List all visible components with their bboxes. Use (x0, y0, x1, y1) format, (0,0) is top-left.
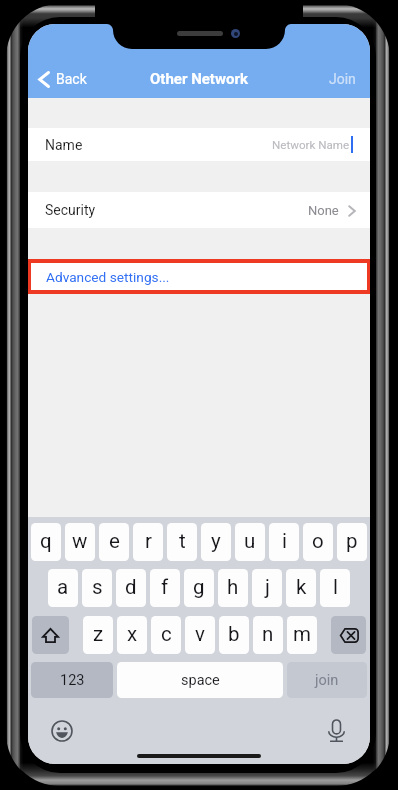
staticText: i (282, 529, 287, 553)
button[interactable]: q (31, 523, 61, 561)
staticText: n (262, 622, 274, 646)
button[interactable]: t (167, 523, 197, 561)
button[interactable]: y (201, 523, 231, 561)
staticText: d (125, 575, 137, 599)
staticText: z (93, 622, 104, 646)
button[interactable]: b (219, 616, 249, 654)
button[interactable]: g (184, 569, 214, 607)
button[interactable]: Emoji keyboard (46, 715, 78, 747)
button[interactable]: w (65, 523, 95, 561)
staticText: q (40, 529, 52, 553)
button[interactable]: u (235, 523, 265, 561)
button[interactable]: n (253, 616, 283, 654)
staticText: u (244, 529, 256, 553)
button[interactable]: Dictation (320, 715, 352, 747)
button[interactable]: Backspace (331, 616, 366, 654)
button[interactable]: j (252, 569, 282, 607)
staticText: m (293, 622, 311, 646)
staticText: Network Name (272, 138, 350, 152)
staticText: x (127, 622, 138, 646)
button[interactable]: d (116, 569, 146, 607)
staticText: r (145, 529, 152, 553)
button[interactable]: Security (28, 192, 370, 228)
staticText: p (346, 529, 358, 553)
staticText: l (333, 575, 338, 599)
button[interactable]: h (218, 569, 248, 607)
staticText: Name (45, 137, 83, 153)
staticText: f (161, 575, 169, 599)
staticText: a (57, 575, 69, 599)
staticText: b (228, 622, 240, 646)
button[interactable]: v (185, 616, 215, 654)
button[interactable]: l (320, 569, 350, 607)
button[interactable]: z (83, 616, 113, 654)
staticText: Security (45, 202, 96, 218)
button[interactable]: a (48, 569, 78, 607)
staticText: space (181, 672, 220, 689)
staticText: c (161, 622, 172, 646)
staticText: k (296, 575, 307, 599)
button[interactable]: p (337, 523, 367, 561)
button[interactable]: Join (329, 60, 356, 98)
staticText: None (308, 203, 339, 218)
staticText: Other Network (150, 70, 248, 88)
staticText: Back (56, 71, 87, 87)
button[interactable]: join (287, 662, 367, 698)
button[interactable]: m (287, 616, 317, 654)
button[interactable]: Name (28, 128, 370, 161)
staticText: o (312, 529, 324, 553)
staticText: 123 (60, 672, 85, 689)
staticText: Advanced settings... (46, 269, 170, 285)
button[interactable]: i (269, 523, 299, 561)
button[interactable]: space (117, 662, 283, 698)
staticText: g (193, 575, 205, 599)
button[interactable]: r (133, 523, 163, 561)
button[interactable]: Back (38, 60, 87, 98)
button[interactable]: s (82, 569, 112, 607)
button[interactable]: Advanced settings... (31, 263, 367, 290)
staticText: t (179, 529, 186, 553)
button[interactable]: x (117, 616, 147, 654)
staticText: y (211, 529, 221, 553)
staticText: w (72, 529, 88, 553)
button[interactable]: Shift (32, 616, 69, 654)
button[interactable]: c (151, 616, 181, 654)
staticText: v (195, 622, 205, 646)
staticText: j (265, 575, 270, 599)
staticText: Join (329, 71, 356, 87)
button[interactable]: o (303, 523, 333, 561)
button[interactable]: k (286, 569, 316, 607)
button[interactable]: 123 (31, 662, 113, 698)
staticText: join (315, 672, 339, 689)
staticText: s (92, 575, 103, 599)
button[interactable]: e (99, 523, 129, 561)
button[interactable]: f (150, 569, 180, 607)
staticText: h (227, 575, 239, 599)
staticText: e (109, 529, 120, 553)
